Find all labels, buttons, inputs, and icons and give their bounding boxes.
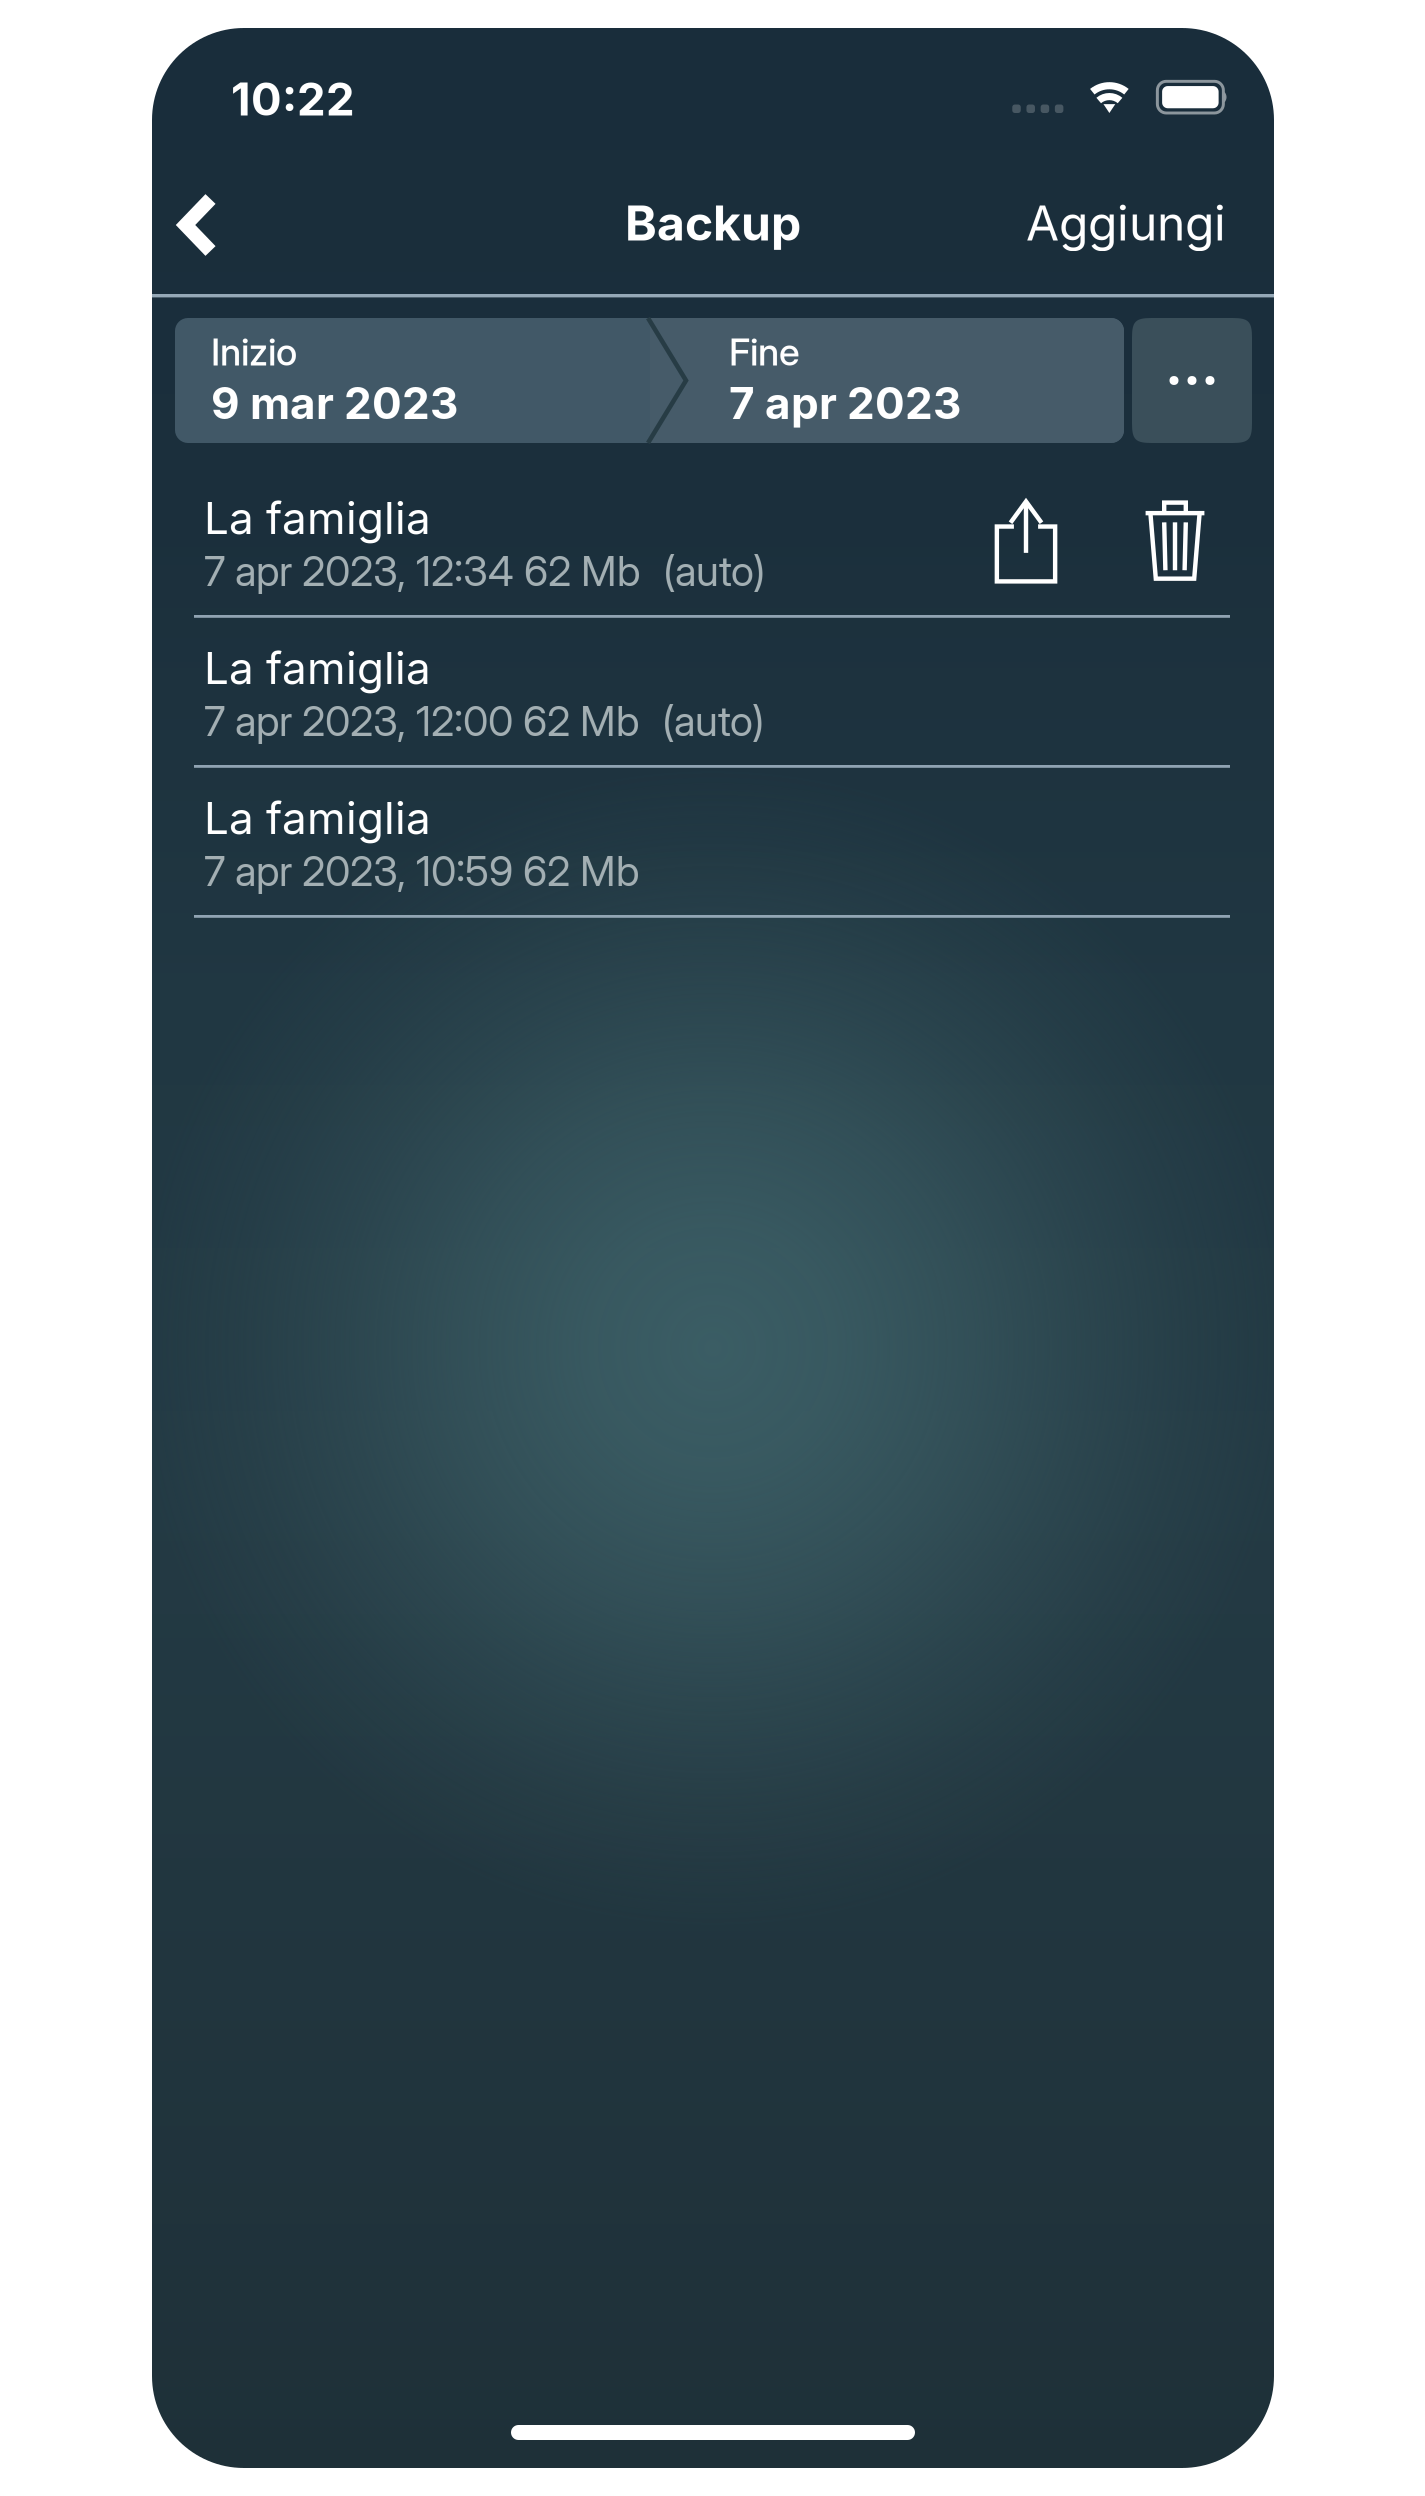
staticText: (auto) <box>663 546 765 596</box>
button[interactable]: Delete backup <box>1109 474 1241 606</box>
staticText: 7 apr 2023, 10:59 62 Mb <box>204 846 639 896</box>
staticText: La famiglia <box>204 791 431 845</box>
staticText: La famiglia <box>204 641 431 695</box>
staticText: Aggiungi <box>1026 194 1226 252</box>
button[interactable]: More options <box>1132 318 1252 443</box>
button[interactable]: Aggiungi <box>896 168 1226 278</box>
staticText: 7 apr 2023 <box>729 376 961 430</box>
staticText: 9 mar 2023 <box>211 376 458 430</box>
staticText: Fine <box>729 329 800 375</box>
staticText: (auto) <box>662 696 764 746</box>
button[interactable]: Share backup <box>960 475 1092 607</box>
staticText: 7 apr 2023, 12:00 62 Mb <box>204 696 639 746</box>
staticText: Inizio <box>211 329 297 375</box>
staticText: La famiglia <box>204 491 431 545</box>
staticText: Backup <box>625 194 801 252</box>
staticText: 10:22 <box>231 72 355 126</box>
staticText: 7 apr 2023, 12:34 62 Mb <box>204 546 640 596</box>
button[interactable]: Back <box>140 170 256 280</box>
